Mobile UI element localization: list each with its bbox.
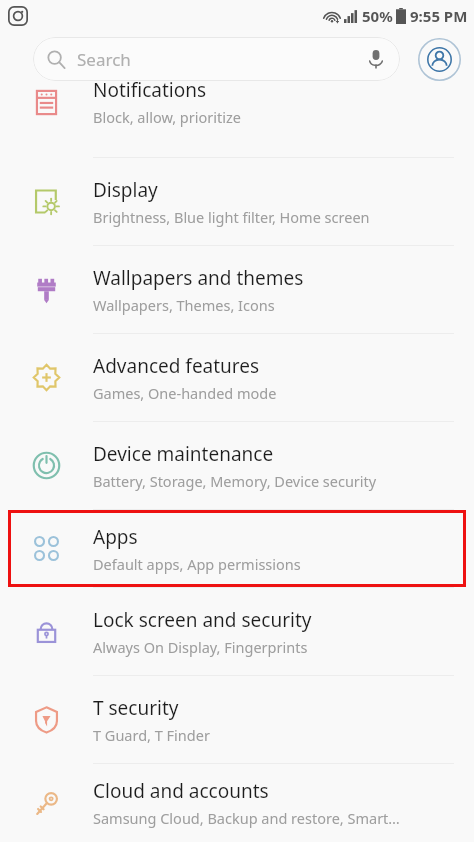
- button[interactable]: Wallpapers and themes: [0, 246, 474, 333]
- staticText: Advanced features: [93, 353, 260, 379]
- staticText: Cloud and accounts: [93, 778, 269, 804]
- staticText: Search: [77, 48, 131, 71]
- staticText: 50%: [362, 6, 393, 26]
- staticText: Block, allow, prioritize: [93, 107, 241, 127]
- button[interactable]: T security: [0, 676, 474, 763]
- staticText: Wallpapers and themes: [93, 265, 304, 291]
- button[interactable]: Search: [33, 37, 400, 81]
- button[interactable]: Apps: [8, 510, 466, 587]
- staticText: T security: [93, 695, 179, 721]
- staticText: Display: [93, 177, 158, 203]
- staticText: T Guard, T Finder: [93, 725, 210, 745]
- staticText: Notifications: [93, 77, 207, 103]
- button[interactable]: Lock screen and security: [0, 588, 474, 675]
- staticText: Device maintenance: [93, 441, 274, 467]
- other: Search: [47, 50, 66, 69]
- staticText: Battery, Storage, Memory, Device securit…: [93, 471, 377, 491]
- button[interactable]: Cloud and accounts: [0, 764, 474, 842]
- staticText: Apps: [93, 524, 138, 550]
- staticText: 9:55 PM: [410, 6, 468, 26]
- staticText: Games, One-handed mode: [93, 383, 277, 403]
- button[interactable]: Notifications: [0, 91, 474, 157]
- staticText: Samsung Cloud, Backup and restore, Smart…: [93, 808, 400, 828]
- staticText: Lock screen and security: [93, 607, 312, 633]
- button[interactable]: Display: [0, 158, 474, 245]
- button[interactable]: Account: [417, 37, 462, 82]
- button[interactable]: Advanced features: [0, 334, 474, 421]
- staticText: Always On Display, Fingerprints: [93, 637, 308, 657]
- staticText: Brightness, Blue light filter, Home scre…: [93, 207, 370, 227]
- staticText: Wallpapers, Themes, Icons: [93, 295, 275, 315]
- button[interactable]: Voice search: [366, 49, 386, 69]
- staticText: Default apps, App permissions: [93, 554, 301, 574]
- button[interactable]: Device maintenance: [0, 422, 474, 509]
